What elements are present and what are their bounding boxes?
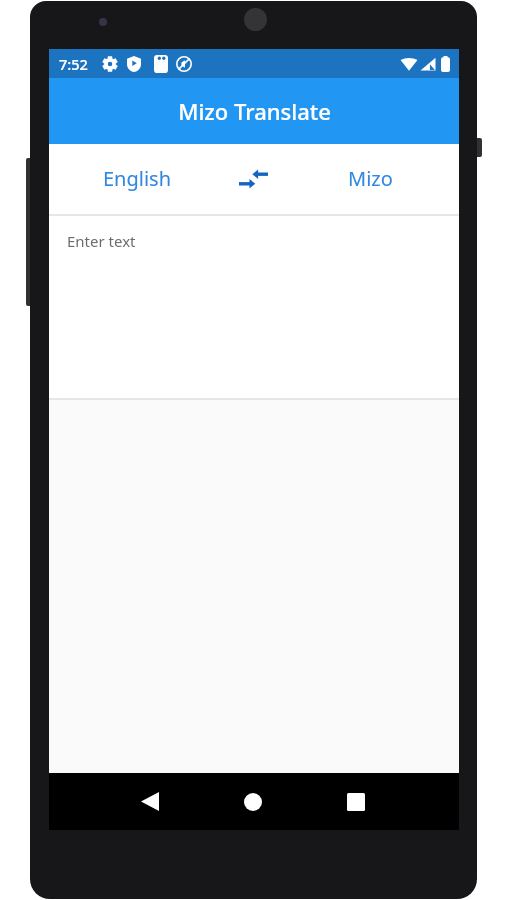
button[interactable]: Swap languages [226,144,281,214]
staticText: 7:52 [59,54,88,74]
staticText: English [103,165,172,192]
button[interactable]: Back [127,773,173,830]
button[interactable]: Recent apps [333,773,379,830]
staticText: Mizo [348,165,393,192]
staticText: Enter text [67,231,136,251]
button[interactable]: Home [230,773,276,830]
button[interactable]: English [49,144,226,214]
staticText: Mizo Translate [178,96,331,126]
button[interactable]: Enter text [49,216,459,398]
button[interactable]: Mizo [281,144,459,214]
